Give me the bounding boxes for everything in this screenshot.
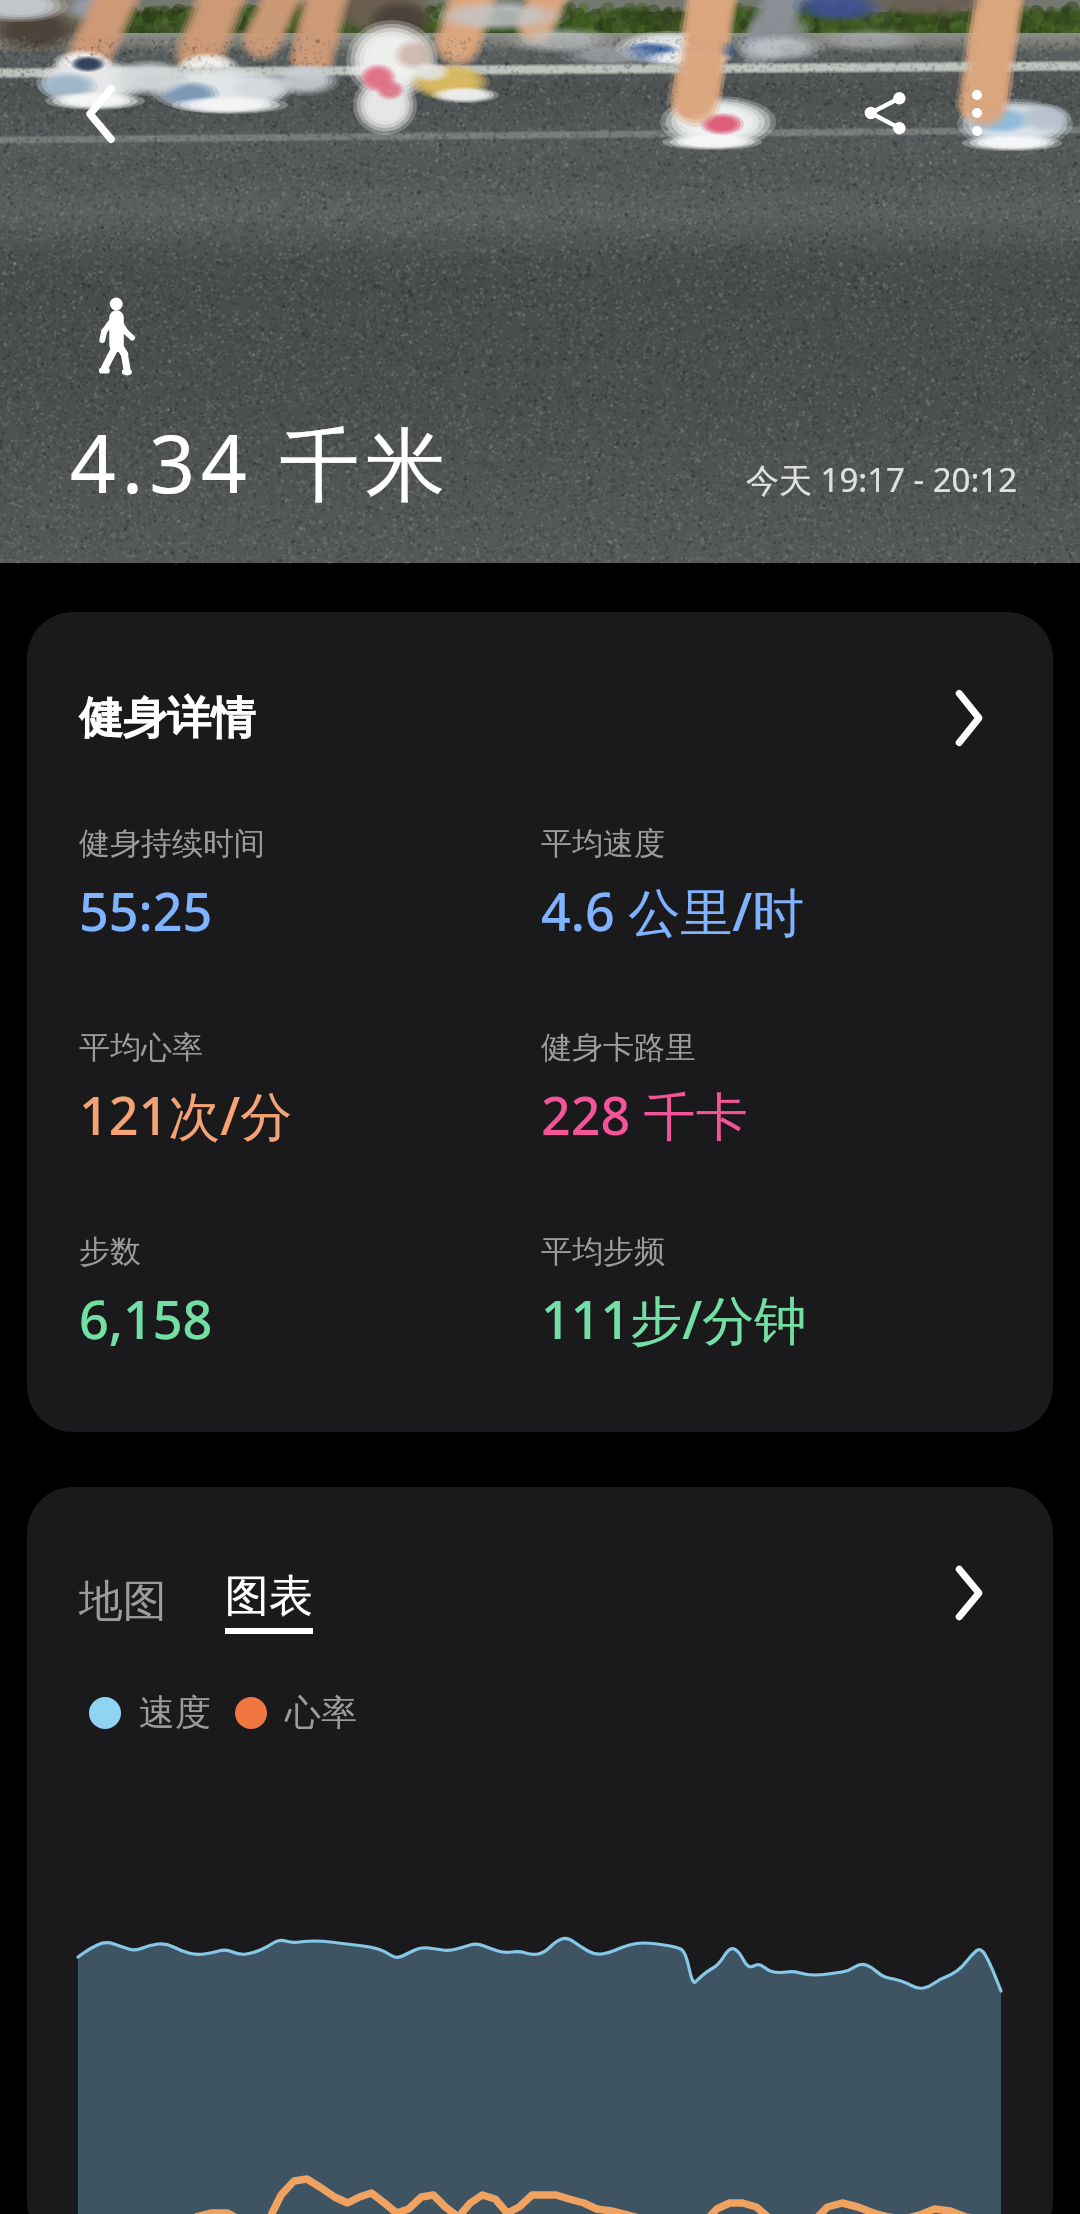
staticText: 速度 bbox=[139, 1690, 211, 1735]
staticText: 平均速度 bbox=[541, 824, 665, 863]
staticText: 121次/分 bbox=[79, 1079, 293, 1150]
staticText: 地图 bbox=[79, 1574, 167, 1629]
button[interactable]: Share bbox=[838, 65, 934, 161]
staticText: 今天 19:17 - 20:12 bbox=[746, 457, 1018, 502]
staticText: 健身详情 bbox=[79, 691, 255, 746]
staticText: 图表 bbox=[225, 1569, 313, 1624]
staticText: 平均步频 bbox=[541, 1232, 665, 1271]
button[interactable]: More options bbox=[929, 65, 1025, 161]
staticText: 4.34 千米 bbox=[70, 407, 452, 516]
staticText: 111步/分钟 bbox=[541, 1283, 807, 1354]
staticText: 健身持续时间 bbox=[79, 824, 265, 863]
staticText: 心率 bbox=[285, 1690, 357, 1735]
staticText: 平均心率 bbox=[79, 1028, 203, 1067]
staticText: 步数 bbox=[79, 1232, 141, 1271]
staticText: 55:25 bbox=[79, 875, 213, 946]
staticText: 6,158 bbox=[79, 1283, 213, 1354]
button[interactable]: 图表 bbox=[225, 1569, 313, 1634]
staticText: 健身卡路里 bbox=[541, 1028, 696, 1067]
button[interactable]: 地图 bbox=[79, 1574, 167, 1629]
button[interactable]: Open chart bbox=[941, 1566, 995, 1620]
button[interactable]: 健身详情 bbox=[27, 612, 1053, 1432]
button[interactable]: Back bbox=[52, 66, 148, 162]
staticText: 4.6 公里/时 bbox=[541, 875, 805, 946]
staticText: 228 千卡 bbox=[541, 1079, 748, 1150]
